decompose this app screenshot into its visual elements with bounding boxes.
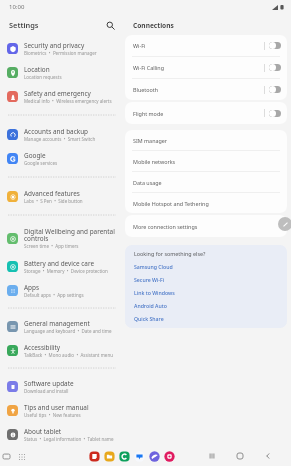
staticText: TalkBack • Mono audio • Assistant menu: [24, 352, 113, 358]
staticText: General management: [24, 319, 90, 328]
staticText: Link to Windows: [134, 289, 175, 296]
button[interactable]: Wi-Fi Calling: [125, 57, 287, 78]
staticText: Looking for something else?: [134, 250, 206, 257]
staticText: Bluetooth: [133, 86, 159, 93]
staticText: Quick Share: [134, 315, 164, 322]
staticText: Location requests: [24, 74, 62, 80]
button[interactable]: Tips and user manual: [0, 398, 125, 422]
button[interactable]: Google: [0, 146, 125, 170]
staticText: Default apps • App settings: [24, 292, 84, 298]
staticText: Medical info • Wireless emergency alerts: [24, 98, 112, 104]
staticText: Tips and user manual: [24, 403, 89, 412]
staticText: Google: [24, 151, 46, 160]
staticText: Mobile Hotspot and Tethering: [133, 200, 209, 207]
button[interactable]: Samsung Cloud: [134, 260, 278, 273]
button[interactable]: Data usage: [125, 172, 287, 192]
staticText: SIM manager: [133, 137, 168, 144]
staticText: Labs • S Pen • Side button: [24, 198, 83, 204]
staticText: Battery and device care: [24, 259, 95, 268]
staticText: Biometrics • Permission manager: [24, 50, 97, 56]
staticText: Flight mode: [133, 110, 164, 117]
button[interactable]: Home: [234, 450, 245, 461]
button[interactable]: Toggle: [269, 42, 281, 49]
button[interactable]: Accounts and backup: [0, 122, 125, 146]
staticText: Security and privacy: [24, 41, 85, 50]
button[interactable]: Accessibility: [0, 338, 125, 362]
button[interactable]: internet: [149, 451, 160, 462]
button[interactable]: gallery: [164, 451, 175, 462]
button[interactable]: Quick Share: [134, 312, 278, 325]
staticText: Secure Wi-Fi: [134, 276, 165, 283]
button[interactable]: Bluetooth: [125, 79, 287, 100]
staticText: Download and install: [24, 388, 69, 394]
button[interactable]: Toggle: [269, 64, 281, 71]
button[interactable]: Advanced features: [0, 184, 125, 208]
staticText: Language and keyboard • Date and time: [24, 328, 112, 334]
staticText: Wi-Fi Calling: [133, 64, 164, 71]
staticText: Settings: [9, 20, 39, 30]
button[interactable]: Safety and emergency: [0, 84, 125, 108]
staticText: Status • Legal information • Tablet name: [24, 436, 114, 442]
button[interactable]: Link to Windows: [134, 286, 278, 299]
staticText: Digital Wellbeing and parental controls: [24, 227, 115, 243]
button[interactable]: Mobile Hotspot and Tethering: [125, 193, 287, 213]
button[interactable]: Digital Wellbeing and parental controls: [0, 222, 125, 254]
staticText: More connection settings: [133, 223, 198, 230]
staticText: About tablet: [24, 427, 62, 436]
button[interactable]: Recents: [206, 450, 217, 461]
button[interactable]: SIM manager: [125, 130, 287, 150]
button[interactable]: General management: [0, 314, 125, 338]
staticText: 10:00: [9, 3, 25, 11]
button[interactable]: Apps: [0, 278, 125, 302]
button[interactable]: Secure Wi-Fi: [134, 273, 278, 286]
button[interactable]: Flight mode: [125, 102, 287, 124]
staticText: Manage accounts • Smart Switch: [24, 136, 96, 142]
staticText: Data usage: [133, 179, 162, 186]
button[interactable]: contacts: [119, 451, 130, 462]
button[interactable]: messages: [134, 451, 145, 462]
button[interactable]: Toggle: [269, 110, 281, 117]
staticText: Samsung Cloud: [134, 263, 173, 270]
staticText: Software update: [24, 379, 74, 388]
button[interactable]: Android Auto: [134, 299, 278, 312]
staticText: Android Auto: [134, 302, 167, 309]
staticText: Location: [24, 65, 50, 74]
staticText: Google services: [24, 160, 58, 166]
button[interactable]: Back: [262, 450, 273, 461]
staticText: Screen time • App timers: [24, 243, 79, 249]
button[interactable]: Wi-Fi: [125, 35, 287, 56]
button[interactable]: doc: [89, 451, 100, 462]
staticText: Safety and emergency: [24, 89, 91, 98]
staticText: Accounts and backup: [24, 127, 89, 136]
button[interactable]: More connection settings: [125, 215, 287, 237]
button[interactable]: Edit: [278, 217, 291, 231]
staticText: Accessibility: [24, 343, 61, 352]
staticText: Storage • Memory • Device protection: [24, 268, 108, 274]
staticText: Advanced features: [24, 189, 80, 198]
staticText: Wi-Fi: [133, 42, 146, 49]
button[interactable]: All apps: [16, 451, 27, 462]
button[interactable]: About tablet: [0, 422, 125, 446]
staticText: Mobile networks: [133, 158, 176, 165]
button[interactable]: Keyboard: [1, 451, 12, 462]
button[interactable]: Software update: [0, 374, 125, 398]
staticText: Connections: [133, 21, 174, 30]
staticText: Apps: [24, 283, 40, 292]
button[interactable]: Location: [0, 60, 125, 84]
staticText: Useful tips • New features: [24, 412, 81, 418]
button[interactable]: Security and privacy: [0, 36, 125, 60]
button[interactable]: Mobile networks: [125, 151, 287, 171]
button[interactable]: Search: [103, 18, 117, 32]
button[interactable]: folder: [104, 451, 115, 462]
button[interactable]: Battery and device care: [0, 254, 125, 278]
button[interactable]: Toggle: [269, 86, 281, 93]
